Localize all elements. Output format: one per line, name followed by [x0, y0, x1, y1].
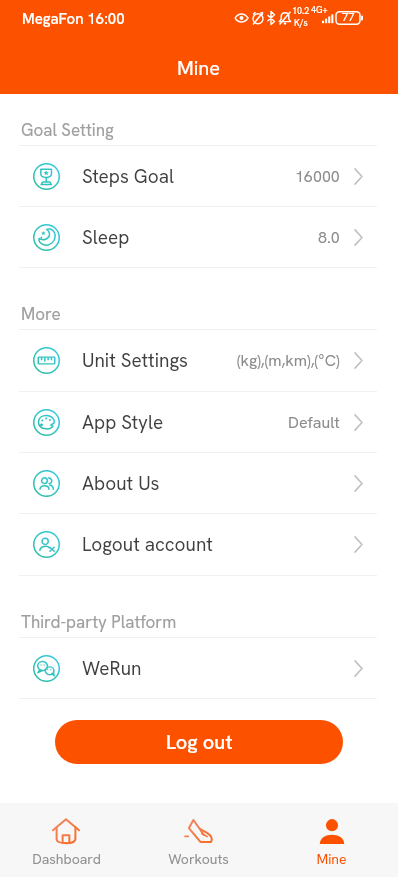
staticText: Mine — [177, 55, 221, 81]
button[interactable]: Dashboard — [0, 805, 132, 876]
button[interactable]: Mine — [265, 805, 398, 876]
staticText: Logout account — [82, 532, 213, 557]
staticText: Unit Settings — [82, 348, 188, 373]
button[interactable]: Logout account — [0, 514, 398, 575]
button[interactable]: Steps Goal — [0, 146, 398, 206]
staticText: Sleep — [82, 225, 130, 250]
staticText: Third-party Platform — [21, 611, 177, 633]
button[interactable]: Sleep — [0, 207, 398, 267]
staticText: K/s — [294, 17, 308, 29]
staticText: 4G+ — [311, 4, 328, 16]
button[interactable]: WeRun — [0, 638, 398, 698]
button[interactable]: Unit Settings — [0, 330, 398, 391]
staticText: Mine — [316, 850, 347, 868]
staticText: Log out — [166, 729, 233, 755]
staticText: MegaFon 16:00 — [22, 9, 125, 29]
button[interactable]: App Style — [0, 392, 398, 452]
button[interactable]: Workouts — [132, 805, 265, 876]
staticText: (kg),(m,km),(°C) — [237, 350, 340, 371]
staticText: Dashboard — [32, 850, 101, 868]
button[interactable]: Log out — [55, 720, 343, 764]
staticText: App Style — [82, 410, 164, 435]
staticText: WeRun — [82, 656, 142, 681]
staticText: Default — [288, 412, 340, 433]
staticText: 8.0 — [318, 227, 340, 248]
staticText: More — [21, 303, 61, 325]
staticText: Goal Setting — [21, 119, 114, 141]
staticText: Workouts — [168, 850, 229, 868]
staticText: About Us — [82, 471, 160, 496]
staticText: 77 — [342, 10, 355, 24]
staticText: 16000 — [295, 166, 340, 187]
staticText: Steps Goal — [82, 164, 174, 189]
staticText: 10.2 — [292, 5, 310, 17]
button[interactable]: About Us — [0, 453, 398, 513]
